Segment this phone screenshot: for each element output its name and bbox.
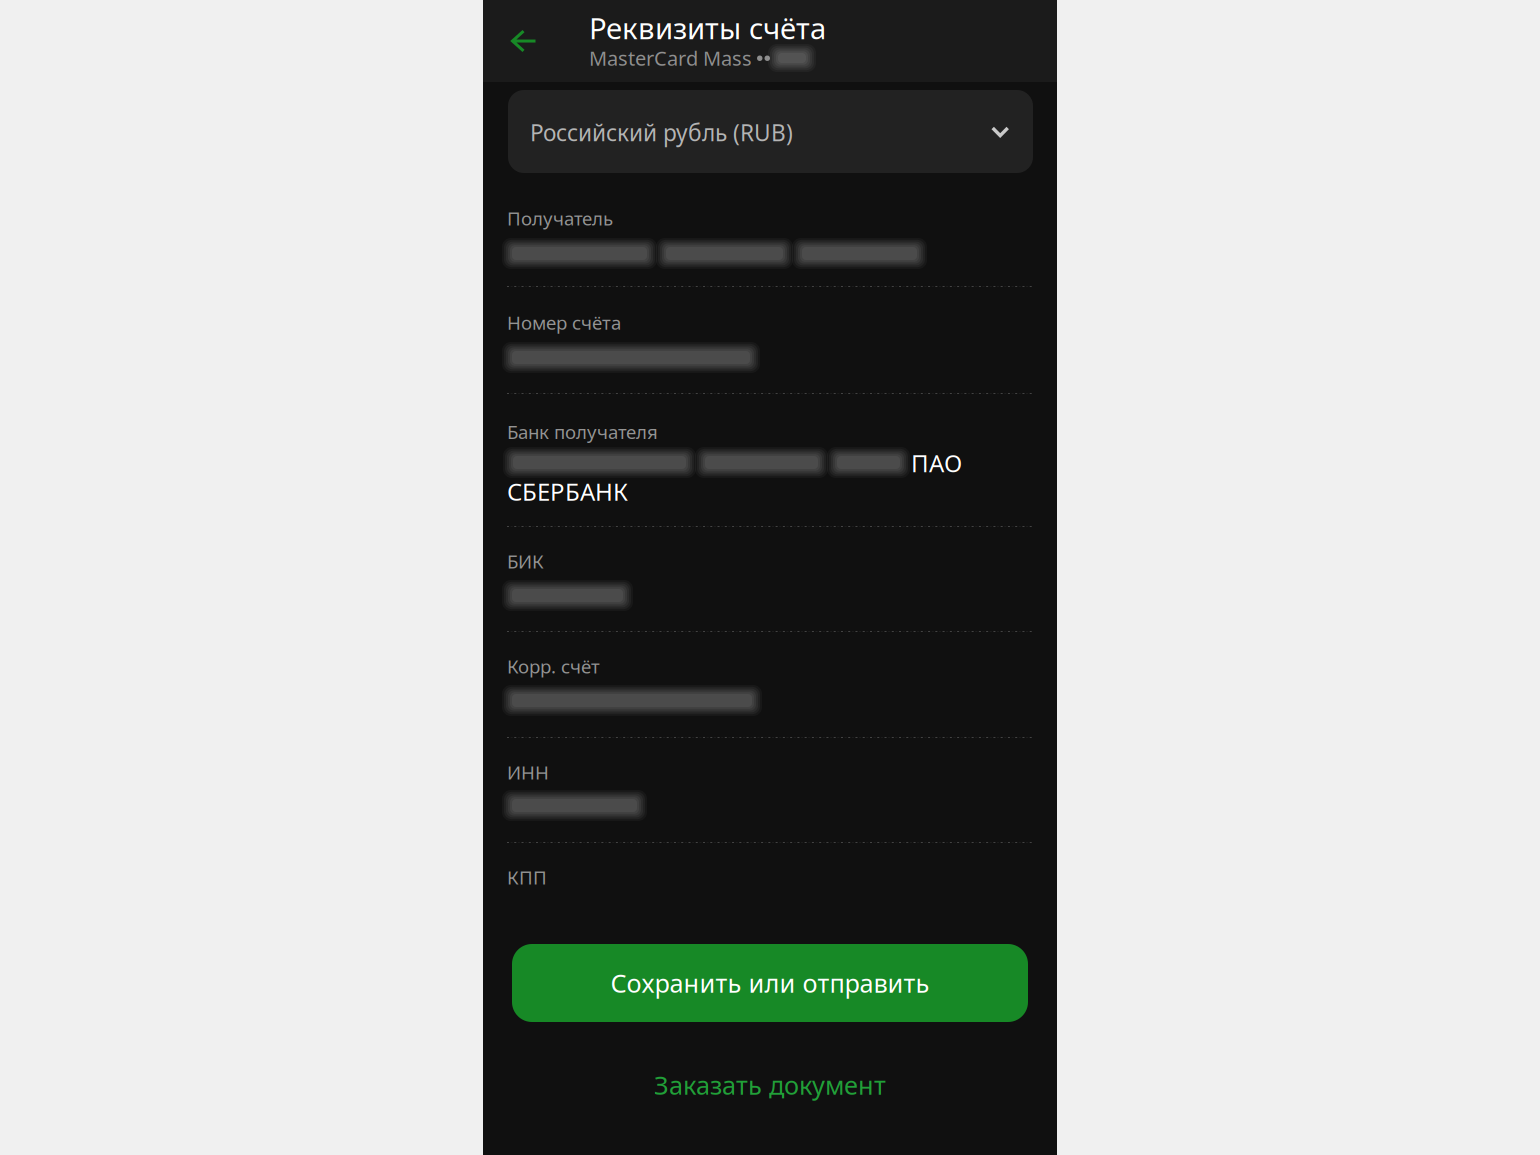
button[interactable]: Корр. счёт [507, 632, 1033, 737]
staticText: СБЕРБАНК [507, 475, 628, 507]
button[interactable]: КПП [507, 843, 1033, 933]
staticText: MasterCard Mass [589, 45, 752, 71]
button[interactable]: БИК [507, 527, 1033, 631]
staticText: КПП [507, 865, 547, 890]
button[interactable]: Back [493, 9, 555, 73]
button[interactable]: Заказать документ [600, 1062, 940, 1108]
button[interactable]: Банк получателя [507, 394, 1033, 526]
button[interactable]: Получатель [507, 185, 1033, 286]
button[interactable]: ИНН [507, 738, 1033, 842]
staticText: Номер счёта [507, 310, 621, 335]
staticText: Российский рубль (RUB) [530, 117, 793, 148]
staticText: ПАО [911, 447, 962, 479]
staticText: Корр. счёт [507, 654, 600, 679]
button[interactable]: Номер счёта [507, 287, 1033, 393]
staticText: БИК [507, 549, 544, 574]
staticText: Заказать документ [654, 1068, 886, 1102]
staticText: ИНН [507, 760, 549, 785]
button[interactable]: Сохранить или отправить [512, 944, 1028, 1022]
staticText: Банк получателя [507, 419, 658, 444]
button[interactable]: Российский рубль (RUB) [508, 90, 1033, 173]
staticText: Реквизиты счёта [589, 8, 826, 47]
staticText: Получатель [507, 206, 613, 231]
staticText: Сохранить или отправить [610, 966, 929, 1000]
